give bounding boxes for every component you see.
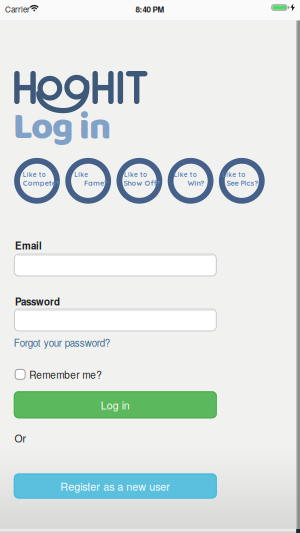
staticText: Or: [14, 431, 25, 445]
staticText: Fame?: [84, 178, 108, 187]
button[interactable]: Forgot your password?: [14, 335, 110, 349]
staticText: Like to: [174, 170, 197, 178]
staticText: Like: [74, 170, 88, 178]
button[interactable]: Email: [14, 253, 217, 276]
staticText: 8:40 PM: [135, 3, 164, 15]
staticText: See Pics?: [226, 178, 258, 187]
staticText: Win?: [188, 178, 205, 187]
staticText: Compete?: [23, 178, 60, 187]
staticText: Email: [15, 238, 42, 252]
button[interactable]: Password: [14, 308, 217, 331]
button[interactable]: Register as a new user: [14, 473, 217, 498]
staticText: Remember me?: [29, 367, 102, 381]
staticText: Like to: [222, 170, 245, 178]
button[interactable]: Log in: [14, 391, 217, 418]
staticText: Like to: [124, 170, 147, 178]
staticText: Password: [15, 294, 60, 308]
staticText: Log in: [101, 397, 130, 412]
staticText: Carrier: [5, 3, 30, 15]
staticText: Show Off?: [123, 178, 160, 187]
staticText: Log in: [13, 97, 111, 158]
staticText: Register as a new user: [60, 478, 170, 494]
button[interactable]: Remember me?: [15, 367, 102, 381]
staticText: Like to: [23, 170, 46, 178]
staticText: Forgot your password?: [14, 335, 110, 349]
